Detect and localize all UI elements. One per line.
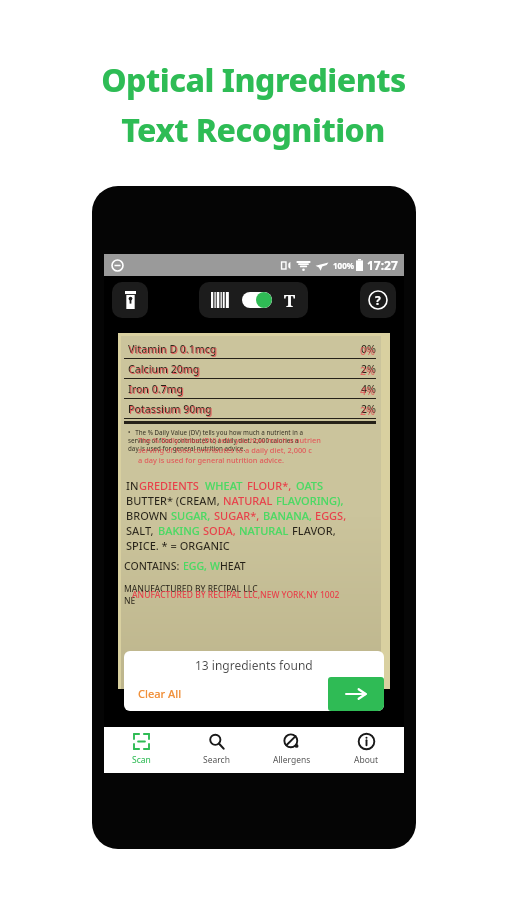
staticText: NATURAL (223, 493, 273, 508)
staticText: • The % Daily Value (DV) tells you how m… (128, 428, 303, 436)
staticText: 2% (361, 362, 376, 376)
staticText: CONTAINS: (124, 559, 180, 573)
staticText: EGGS, (315, 508, 347, 523)
staticText: day is used for general nutrition advice… (128, 444, 246, 452)
staticText: Optical Ingredients (101, 58, 406, 102)
staticText: ? (375, 292, 381, 308)
staticText: SODA, (203, 523, 236, 538)
staticText: 4% (360, 384, 375, 398)
staticText: FLAVORING), (276, 493, 344, 508)
staticText: BAKING (158, 523, 200, 538)
staticText: SUGAR, (171, 508, 211, 523)
staticText: GREDIENTS (139, 478, 199, 493)
staticText: NE (124, 595, 136, 607)
staticText: 0% (361, 342, 376, 356)
staticText: The % Daily Value (DV) tells you how muc… (138, 435, 321, 445)
staticText: serving of food contributes to a daily d… (128, 436, 299, 444)
staticText: 2% (361, 402, 376, 416)
staticText: Calcium 20mg (129, 363, 201, 377)
button[interactable]: Clear All (124, 678, 194, 711)
staticText: NATURAL (239, 523, 289, 538)
staticText: SPICE. * = ORGANIC (126, 538, 230, 553)
staticText: 17:27 (367, 257, 398, 273)
button[interactable]: Toggle flashlight (112, 282, 148, 318)
staticText: Search (203, 754, 230, 766)
staticText: EGG, (183, 559, 207, 573)
staticText: 0% (360, 344, 375, 358)
staticText: BROWN (126, 508, 168, 523)
staticText: SUGAR*, (214, 508, 260, 523)
staticText: Potassium 90mg (128, 402, 212, 416)
staticText: a day is used for general nutrition advi… (138, 455, 284, 465)
staticText: FLAVOR, (292, 523, 336, 538)
staticText: WHEAT (205, 478, 243, 493)
staticText: About (354, 754, 379, 766)
staticText: 13 ingredients found (195, 657, 313, 673)
button[interactable]: Allergens (254, 727, 329, 773)
staticText: Iron 0.7mg (128, 382, 183, 396)
staticText: W (210, 559, 220, 573)
staticText: ANUFACTURED BY RECIPAL LLC,NEW YORK,NY 1… (132, 589, 340, 601)
staticText: FLOUR*, (247, 478, 292, 493)
staticText: Vitamin D 0.1mcg (129, 343, 218, 357)
staticText: Calcium 20mg (128, 362, 200, 376)
button[interactable]: Switch between barcode and text mode (199, 282, 308, 318)
button[interactable]: Next (328, 677, 384, 711)
staticText: Allergens (273, 754, 311, 766)
button[interactable]: About (329, 727, 404, 773)
staticText: 2% (360, 364, 375, 378)
staticText: 4% (361, 382, 376, 396)
staticText: Potassium 90mg (129, 403, 213, 417)
button[interactable]: Search (179, 727, 254, 773)
staticText: 100% (333, 260, 354, 271)
staticText: BANANA, (263, 508, 312, 523)
staticText: IN (126, 478, 139, 493)
staticText: BUTTER* (CREAM, (126, 493, 220, 508)
button[interactable]: Help (360, 282, 396, 318)
staticText: 2% (360, 404, 375, 418)
button[interactable]: Scan (104, 727, 179, 773)
staticText: MANUFACTURED BY RECIPAL LLC (124, 583, 258, 595)
staticText: OATS (296, 478, 324, 493)
staticText: Text Recognition (121, 108, 385, 152)
staticText: Iron 0.7mg (129, 383, 184, 397)
staticText: Vitamin D 0.1mcg (128, 342, 217, 356)
staticText: Clear All (138, 686, 182, 701)
staticText: SALT, (126, 523, 154, 538)
staticText: serving of food contributes to a daily d… (138, 445, 312, 455)
staticText: T (284, 289, 296, 312)
staticText: HEAT (220, 559, 246, 573)
staticText: Scan (132, 754, 151, 766)
